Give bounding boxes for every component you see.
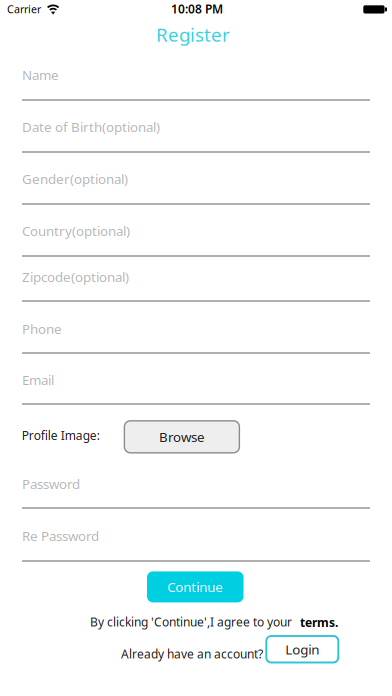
staticText: Date of Birth(optional) (22, 118, 160, 136)
button[interactable]: Gender(optional) (22, 168, 370, 208)
button[interactable]: terms. (300, 614, 338, 630)
staticText: 10:08 PM (171, 1, 223, 17)
staticText: Gender(optional) (22, 170, 128, 188)
button[interactable]: Phone (22, 318, 370, 357)
button[interactable]: Password (22, 473, 370, 512)
staticText: Password (22, 475, 80, 493)
staticText: Name (22, 66, 59, 84)
staticText: Zipcode(optional) (22, 268, 129, 286)
staticText: Browse (159, 428, 205, 446)
staticText: By clicking 'Continue',I agree to your (90, 614, 292, 630)
staticText: Already have an account? (121, 646, 263, 662)
staticText: Country(optional) (22, 222, 130, 240)
staticText: Login (285, 640, 319, 658)
button[interactable]: Continue (147, 571, 243, 602)
staticText: Re Password (22, 527, 99, 545)
button[interactable]: Zipcode(optional) (22, 266, 370, 305)
staticText: Continue (167, 578, 223, 596)
button[interactable]: Date of Birth(optional) (22, 116, 370, 156)
staticText: Register (156, 22, 230, 47)
button[interactable]: Re Password (22, 525, 370, 565)
staticText: Phone (22, 320, 62, 338)
staticText: Profile Image: (22, 427, 100, 443)
staticText: terms. (300, 614, 338, 630)
button[interactable]: Name (22, 64, 370, 104)
staticText: Carrier (7, 2, 41, 16)
button[interactable]: Country(optional) (22, 220, 370, 260)
button[interactable]: Email (22, 369, 370, 408)
button[interactable]: Login (266, 636, 338, 662)
button[interactable]: Browse (124, 421, 239, 453)
staticText: Email (22, 371, 54, 389)
